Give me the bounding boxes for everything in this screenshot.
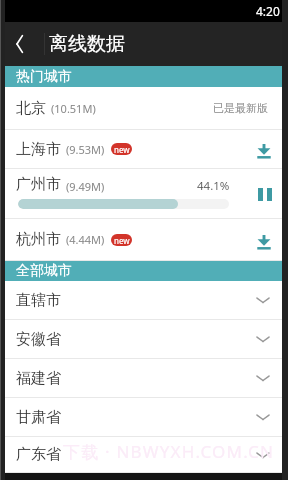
- staticText: 热门城市: [16, 68, 72, 86]
- button[interactable]: Back: [3, 27, 37, 61]
- button[interactable]: 福建省: [5, 359, 282, 398]
- staticText: 安徽省: [16, 330, 61, 349]
- staticText: 福建省: [16, 369, 61, 388]
- staticText: (9.49M): [66, 179, 105, 194]
- staticText: 上海市: [16, 140, 61, 159]
- button[interactable]: 广东省: [5, 437, 282, 473]
- staticText: 已是最新版: [213, 101, 268, 115]
- staticText: 4:20: [256, 3, 280, 19]
- staticText: 北京: [16, 99, 46, 118]
- staticText: 甘肃省: [16, 408, 61, 427]
- staticText: 全部城市: [16, 262, 72, 280]
- button[interactable]: 北京: [5, 87, 282, 130]
- button[interactable]: 广州市: [5, 169, 282, 219]
- button[interactable]: 安徽省: [5, 320, 282, 359]
- staticText: (4.44M): [66, 232, 105, 247]
- button[interactable]: 直辖市: [5, 281, 282, 320]
- staticText: 直辖市: [16, 291, 61, 310]
- button[interactable]: 上海市: [5, 130, 282, 169]
- button[interactable]: 杭州市: [5, 219, 282, 261]
- staticText: 杭州市: [16, 230, 61, 249]
- staticText: 下载 · NBWYXH.COM.CN: [63, 440, 275, 463]
- button[interactable]: 甘肃省: [5, 398, 282, 437]
- staticText: (9.53M): [66, 142, 105, 157]
- staticText: 广东省: [16, 445, 61, 464]
- button[interactable]: Download: [250, 135, 278, 163]
- staticText: (10.51M): [51, 101, 96, 116]
- staticText: new: [114, 235, 130, 246]
- staticText: new: [114, 144, 130, 155]
- staticText: 44.1%: [197, 178, 230, 194]
- button[interactable]: Download: [250, 226, 278, 254]
- staticText: 离线数据: [49, 32, 125, 56]
- staticText: 广州市: [16, 175, 61, 194]
- button[interactable]: Pause: [251, 180, 279, 208]
